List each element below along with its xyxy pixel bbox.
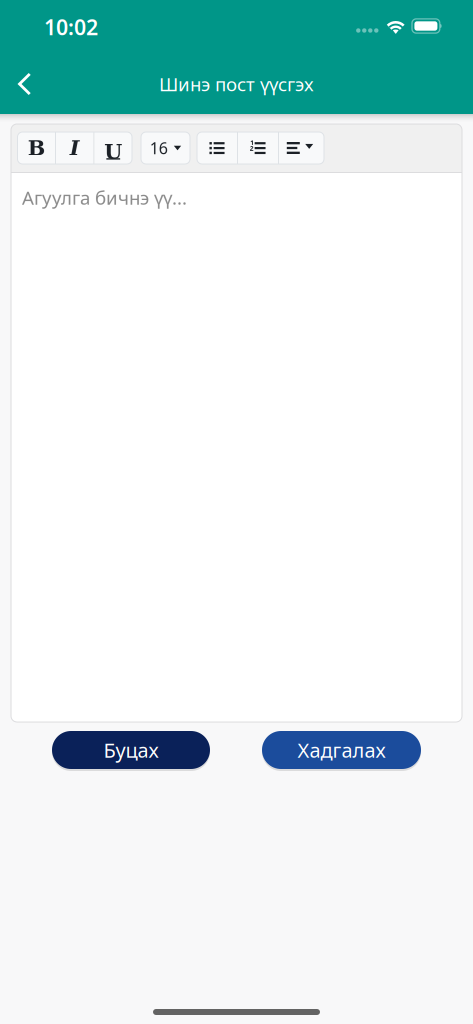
staticText: Буцах xyxy=(103,737,158,763)
button[interactable]: Numbered list xyxy=(238,132,278,164)
staticText: Агуулга бичнэ үү... xyxy=(22,185,187,210)
button[interactable]: Хадгалах xyxy=(262,731,421,769)
staticText: 16 xyxy=(150,137,168,159)
button[interactable]: Back xyxy=(0,58,48,110)
staticText: Хадгалах xyxy=(297,737,385,763)
staticText: B xyxy=(28,136,45,160)
button[interactable]: Underline xyxy=(94,132,132,164)
button[interactable]: Italic xyxy=(56,132,93,164)
button[interactable]: Буцах xyxy=(52,731,210,769)
button[interactable]: Font size 16 xyxy=(141,132,190,164)
staticText: I xyxy=(70,136,80,160)
staticText: U xyxy=(104,140,122,164)
staticText: 10:02 xyxy=(44,13,98,41)
button[interactable]: Bold xyxy=(17,132,55,164)
button[interactable]: Bulleted list xyxy=(197,132,237,164)
staticText: Шинэ пост үүсгэх xyxy=(159,72,314,96)
button[interactable]: Text alignment xyxy=(279,132,324,164)
